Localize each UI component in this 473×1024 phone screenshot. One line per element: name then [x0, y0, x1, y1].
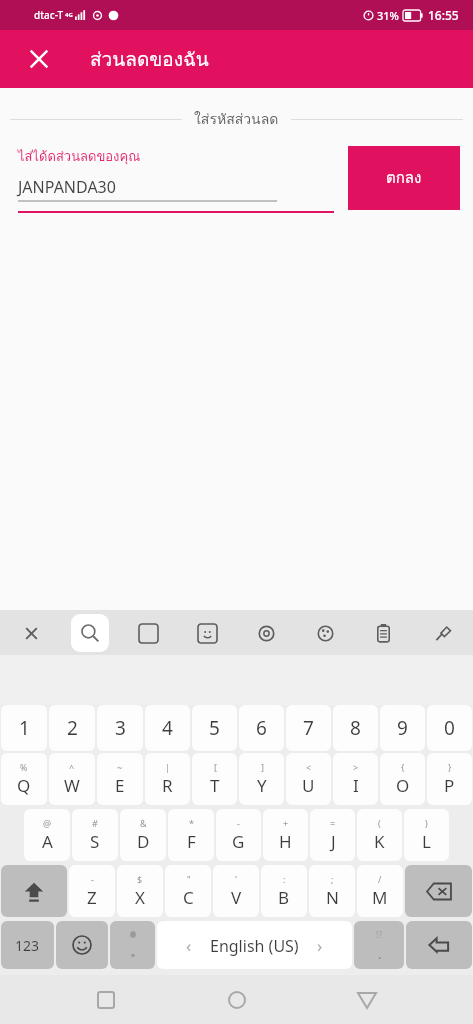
staticText: X	[135, 886, 145, 909]
button[interactable]: (	[357, 809, 402, 861]
staticText: ^	[69, 761, 75, 773]
button[interactable]: )	[404, 809, 449, 861]
button[interactable]: -	[69, 865, 115, 917]
staticText: T	[210, 774, 220, 797]
staticText: Q	[17, 774, 31, 797]
staticText: >	[353, 761, 359, 773]
staticText: ~	[117, 761, 123, 773]
button[interactable]: {	[380, 753, 425, 805]
button[interactable]: Enter	[406, 921, 472, 969]
button[interactable]: GIF	[129, 614, 167, 652]
button[interactable]: 1	[1, 705, 47, 751]
button[interactable]: /	[357, 865, 403, 917]
staticText: @	[43, 817, 52, 829]
button[interactable]: [	[192, 753, 237, 805]
button[interactable]: 7	[286, 705, 331, 751]
staticText: Y	[257, 774, 267, 797]
button[interactable]: }	[427, 753, 472, 805]
button[interactable]: =	[310, 809, 355, 861]
button[interactable]: 123	[1, 921, 54, 969]
button[interactable]: Clipboard	[364, 614, 402, 652]
button[interactable]: ]	[239, 753, 284, 805]
staticText: D	[137, 830, 150, 853]
staticText: B	[278, 886, 290, 909]
button[interactable]: +	[263, 809, 308, 861]
button[interactable]: ;	[309, 865, 355, 917]
button[interactable]: 0	[427, 705, 472, 751]
button[interactable]: :	[261, 865, 307, 917]
button[interactable]: 9	[380, 705, 425, 751]
staticText: 1	[19, 715, 30, 741]
staticText: #	[92, 817, 98, 829]
button[interactable]: 8	[333, 705, 378, 751]
staticText: '	[235, 873, 238, 885]
button[interactable]: Backspace	[405, 865, 472, 917]
button[interactable]: 5	[192, 705, 237, 751]
button[interactable]: *	[168, 809, 214, 861]
button[interactable]: Home	[213, 976, 261, 1024]
staticText: 8	[350, 715, 361, 741]
button[interactable]: Recents	[82, 976, 130, 1024]
button[interactable]: -	[216, 809, 261, 861]
staticText: 6	[256, 715, 267, 741]
staticText: $	[137, 873, 143, 885]
staticText: H	[279, 830, 292, 853]
button[interactable]: ตกลง	[348, 146, 460, 210]
button[interactable]: Pin	[423, 614, 461, 652]
button[interactable]: Shift	[1, 865, 67, 917]
button[interactable]: 2	[49, 705, 95, 751]
button[interactable]: "	[165, 865, 211, 917]
button[interactable]: <	[286, 753, 331, 805]
button[interactable]: |	[145, 753, 190, 805]
staticText: ‹	[186, 934, 192, 957]
button[interactable]: ‹	[157, 921, 352, 969]
button[interactable]: Close	[12, 614, 50, 652]
staticText: ›	[317, 934, 323, 957]
staticText: ตกลง	[386, 166, 422, 190]
staticText: K	[374, 830, 385, 853]
staticText: )	[425, 817, 428, 829]
staticText: R	[162, 774, 173, 797]
staticText: /	[378, 873, 382, 885]
staticText: :	[283, 873, 286, 885]
button[interactable]: 6	[239, 705, 284, 751]
button[interactable]: #	[72, 809, 118, 861]
staticText: 7	[303, 715, 314, 741]
staticText: {	[401, 761, 405, 773]
button[interactable]: Emoji	[56, 921, 108, 969]
button[interactable]: $	[117, 865, 163, 917]
button[interactable]: Theme	[306, 614, 344, 652]
staticText: U	[302, 774, 315, 797]
button[interactable]: Stickers	[188, 614, 226, 652]
button[interactable]: '	[213, 865, 259, 917]
button[interactable]: Close	[16, 36, 62, 82]
staticText: 4	[162, 715, 173, 741]
staticText: (	[378, 817, 381, 829]
button[interactable]: @	[24, 809, 70, 861]
button[interactable]: 4	[145, 705, 190, 751]
button[interactable]: Back	[343, 976, 391, 1024]
button[interactable]: ^	[49, 753, 95, 805]
button[interactable]: Search	[71, 614, 109, 652]
staticText: 5	[209, 715, 220, 741]
button[interactable]: %	[1, 753, 47, 805]
staticText: N	[326, 886, 339, 909]
button[interactable]: !?	[354, 921, 404, 969]
button[interactable]: Settings	[247, 614, 285, 652]
staticText: .	[378, 945, 382, 963]
button[interactable]: &	[120, 809, 166, 861]
staticText: W	[64, 774, 80, 797]
staticText: P	[444, 774, 455, 797]
staticText: English (US)	[210, 935, 299, 957]
staticText: %	[20, 761, 28, 773]
staticText: "	[187, 873, 191, 885]
button[interactable]: >	[333, 753, 378, 805]
staticText: }	[448, 761, 452, 773]
staticText: J	[331, 830, 336, 853]
staticText: 0	[444, 715, 455, 741]
staticText: [	[214, 761, 217, 773]
button[interactable]: Voice input	[110, 921, 155, 969]
button[interactable]: ~	[97, 753, 143, 805]
button[interactable]: 3	[97, 705, 143, 751]
staticText: S	[90, 830, 100, 853]
